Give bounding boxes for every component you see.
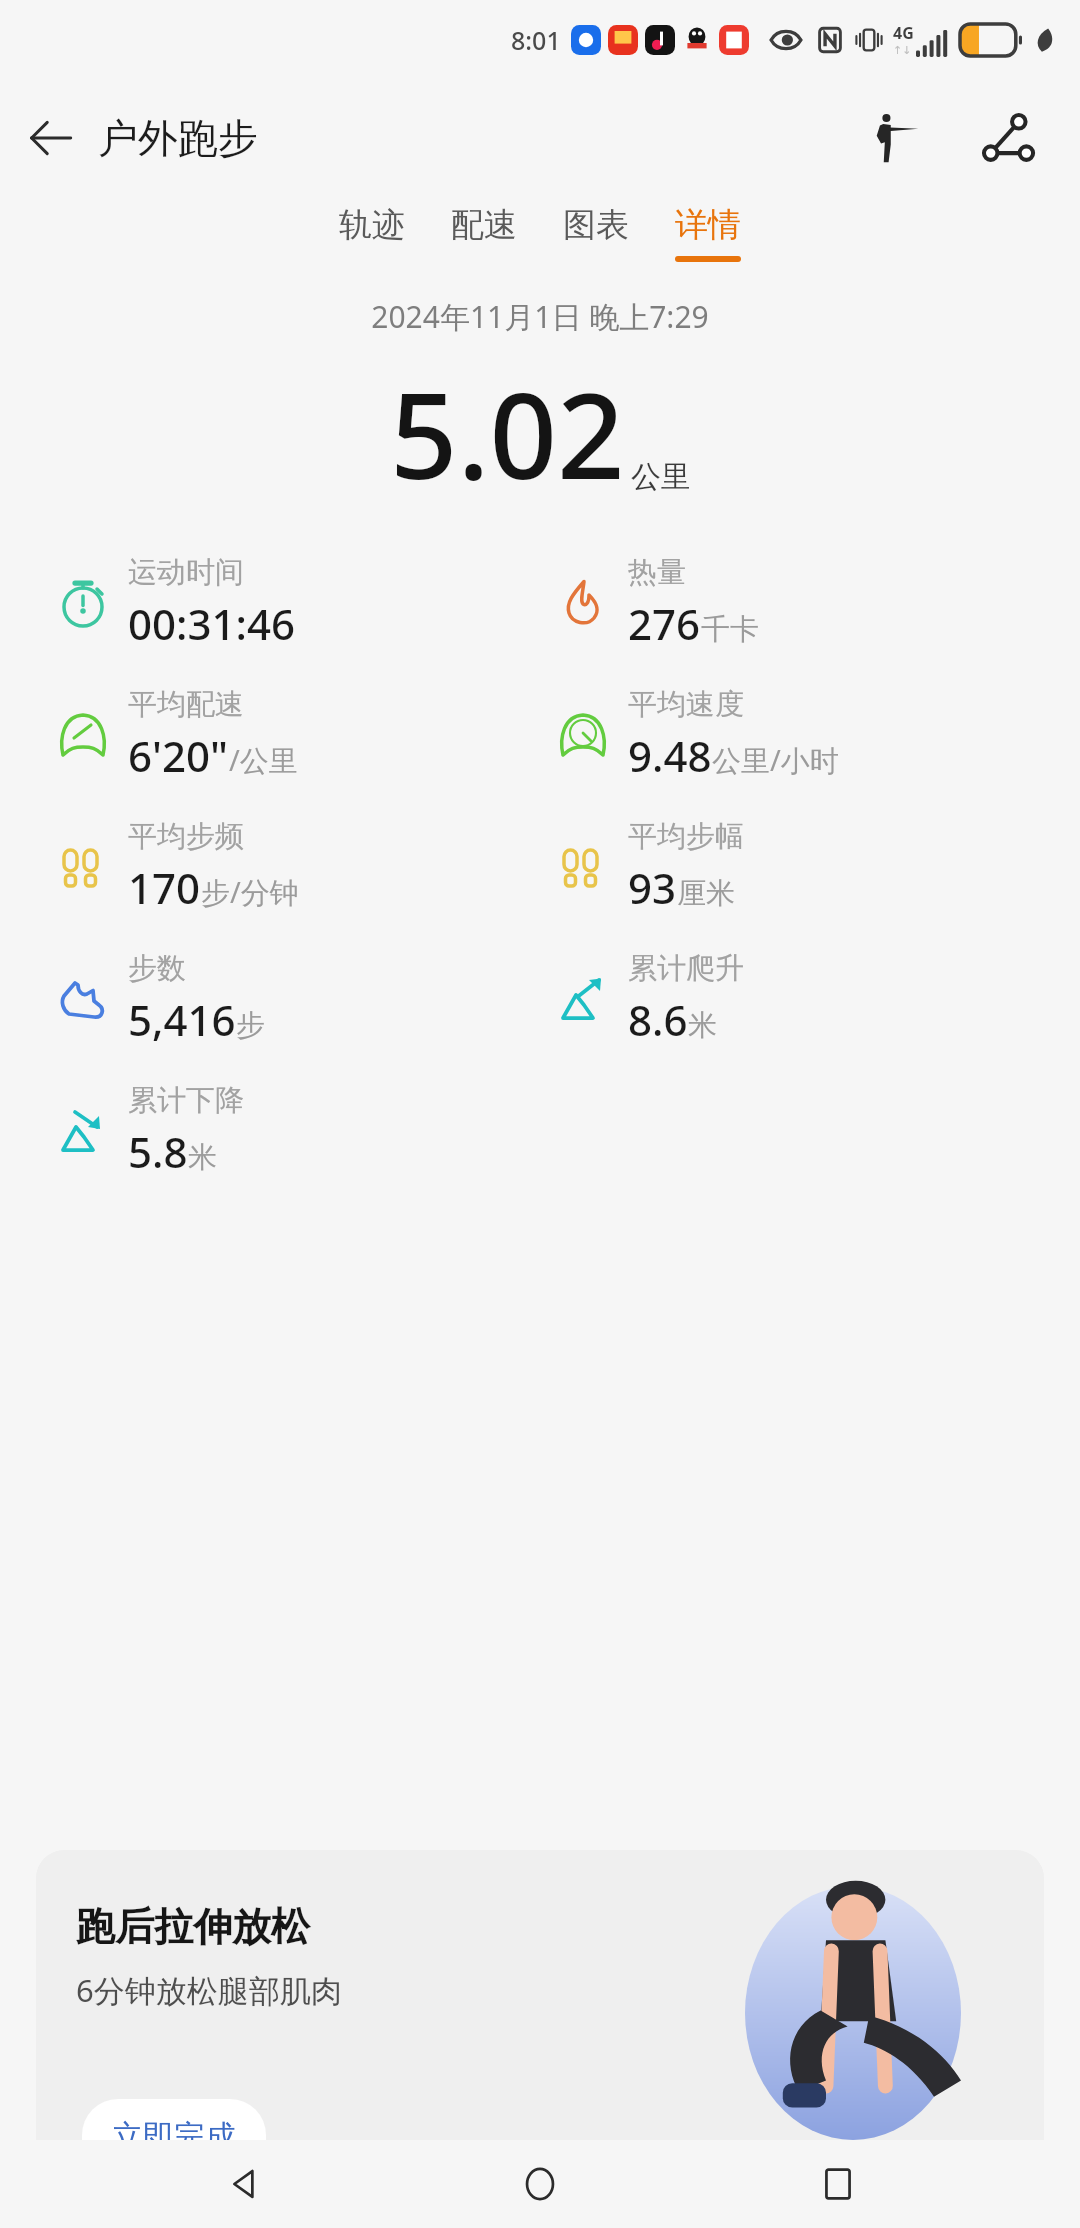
staticText: 平均速度 (628, 686, 744, 723)
button[interactable]: 详情 (669, 198, 747, 268)
staticText: 平均步幅 (628, 818, 744, 855)
staticText: 厘米 (677, 875, 735, 912)
other: Eye comfort (769, 23, 803, 57)
button[interactable]: Share (960, 90, 1056, 186)
button[interactable]: Stretch (846, 90, 942, 186)
button[interactable]: 平均速度 (552, 686, 839, 784)
button[interactable]: 平均步幅 (552, 818, 744, 916)
button[interactable]: Recents (783, 2140, 893, 2228)
staticText: 累计爬升 (628, 950, 744, 987)
button[interactable]: 平均步频 (52, 818, 299, 916)
staticText: 2024年11月1日 晚上7:29 (371, 296, 709, 337)
staticText: 5,416 (128, 991, 236, 1048)
button[interactable]: 热量 (552, 554, 759, 652)
staticText: 立即完成 (112, 2117, 236, 2140)
staticText: 米 (688, 1007, 717, 1044)
button[interactable]: 平均配速 (52, 686, 298, 784)
staticText: 00:31:46 (128, 595, 295, 652)
button[interactable]: Back (8, 96, 92, 180)
staticText: 6'20" (128, 727, 229, 784)
button[interactable]: 图表 (557, 198, 635, 268)
staticText: 步 (236, 1007, 265, 1044)
staticText: 5.02 (390, 353, 625, 514)
staticText: 户外跑步 (98, 113, 258, 163)
staticText: ↑↓ (893, 44, 912, 57)
staticText: 9.48 (628, 727, 712, 784)
staticText: 8.6 (628, 991, 688, 1048)
staticText: 配速 (451, 204, 517, 246)
staticText: 平均步频 (128, 818, 244, 855)
staticText: 热量 (628, 554, 686, 591)
staticText: 276 (628, 595, 701, 652)
button[interactable]: 累计爬升 (552, 950, 744, 1048)
staticText: 6分钟放松腿部肌肉 (76, 1969, 342, 2011)
button[interactable]: 轨迹 (333, 198, 411, 268)
staticText: 93 (628, 859, 677, 916)
staticText: 步/分钟 (201, 872, 299, 912)
button[interactable]: 配速 (445, 198, 523, 268)
staticText: 公里/小时 (712, 740, 839, 780)
staticText: 170 (128, 859, 201, 916)
staticText: 累计下降 (128, 1082, 244, 1119)
button[interactable]: 跑后拉伸放松 (36, 1850, 1044, 2140)
button[interactable]: 立即完成 (82, 2099, 266, 2140)
staticText: 5.8 (128, 1123, 188, 1180)
staticText: 4G (893, 22, 914, 44)
staticText: /公里 (229, 740, 298, 780)
button[interactable]: 运动时间 (52, 554, 295, 652)
staticText: 跑后拉伸放松 (76, 1902, 310, 1951)
staticText: 运动时间 (128, 554, 244, 591)
staticText: 千卡 (701, 611, 759, 648)
staticText: 平均配速 (128, 686, 244, 723)
button[interactable]: 步数 (52, 950, 265, 1048)
staticText: 步数 (128, 950, 186, 987)
staticText: 详情 (675, 204, 741, 246)
staticText: 米 (188, 1139, 217, 1176)
staticText: 8:01 (511, 23, 561, 57)
button[interactable]: Home (485, 2140, 595, 2228)
staticText: 图表 (563, 204, 629, 246)
staticText: 轨迹 (339, 204, 405, 246)
button[interactable]: 累计下降 (52, 1082, 244, 1180)
button[interactable]: Back (188, 2140, 298, 2228)
staticText: 公里 (631, 458, 691, 496)
